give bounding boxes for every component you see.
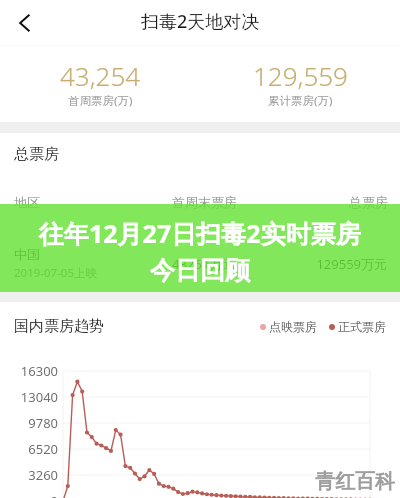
staticText: 中国	[14, 246, 40, 262]
staticText: 青红百科	[315, 469, 395, 494]
staticText: 点映票房	[269, 319, 317, 334]
staticText: 正式票房	[338, 319, 386, 334]
staticText: 总票房	[14, 145, 59, 164]
button[interactable]: 正式票房	[329, 319, 386, 334]
staticText: 今日回顾	[150, 255, 250, 286]
staticText: 首周末票房	[172, 194, 300, 210]
staticText: 129559万元	[300, 255, 387, 273]
staticText: 总票房	[300, 194, 388, 210]
staticText: 3260	[0, 466, 58, 484]
staticText: 2019-07-05上映	[14, 265, 98, 281]
button[interactable]: 中国	[0, 246, 400, 281]
staticText: 129,559	[253, 58, 348, 93]
staticText: 16300	[0, 362, 58, 380]
staticText: 43,254	[60, 58, 141, 93]
button[interactable]: 点映票房	[260, 319, 317, 334]
staticText: 地区	[14, 194, 172, 210]
staticText: 首周票房(万)	[68, 93, 133, 109]
staticText: 扫毒2天地对决	[141, 9, 260, 34]
staticText: 累计票房(万)	[268, 93, 333, 109]
staticText: 国内票房趋势	[14, 317, 104, 336]
staticText: 6520	[0, 440, 58, 458]
staticText: 43264万元	[172, 255, 300, 273]
button[interactable]: Back	[7, 5, 43, 41]
staticText: 0	[0, 492, 58, 498]
staticText: 9780	[0, 414, 58, 432]
staticText: 往年12月27日扫毒2实时票房	[39, 216, 361, 250]
staticText: 13040	[0, 388, 58, 406]
